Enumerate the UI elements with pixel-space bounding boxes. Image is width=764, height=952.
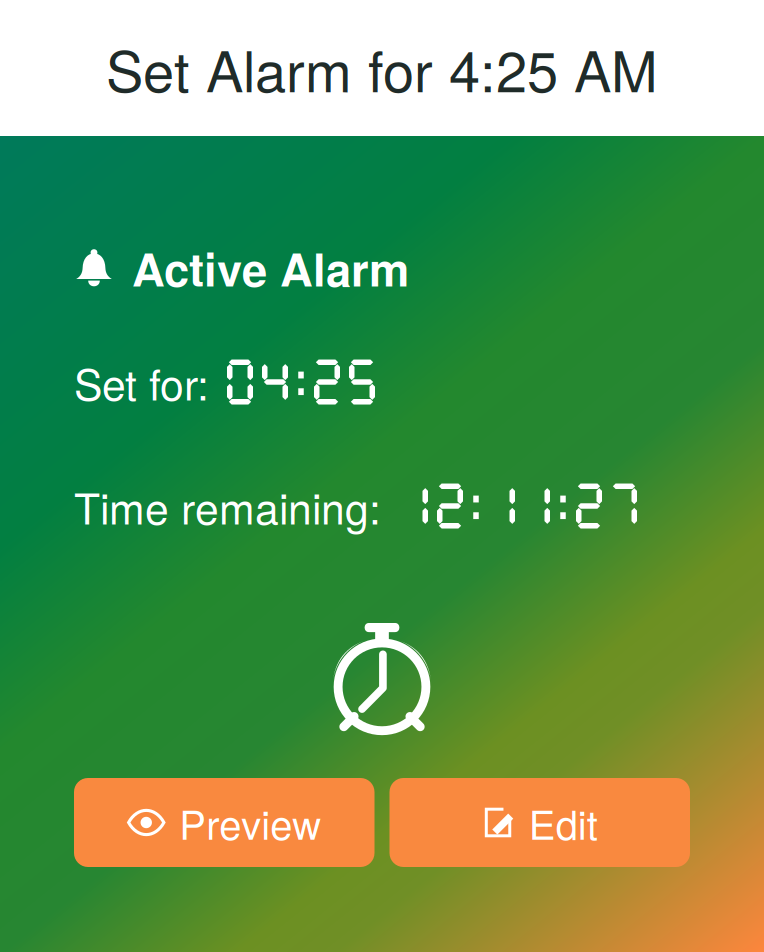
- staticText: Edit: [529, 794, 598, 851]
- button[interactable]: Preview: [74, 778, 374, 867]
- button[interactable]: Edit: [389, 778, 690, 867]
- staticText: Active Alarm: [132, 235, 409, 300]
- staticText: Set for:: [74, 351, 209, 413]
- staticText: Set Alarm for 4:25 AM: [106, 28, 658, 108]
- staticText: Preview: [179, 794, 321, 851]
- staticText: Time remaining:: [74, 475, 381, 537]
